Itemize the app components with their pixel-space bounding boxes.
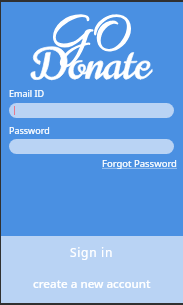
staticText: Password — [9, 124, 50, 136]
button[interactable]: Forgot Password — [98, 155, 181, 172]
button[interactable] — [9, 139, 174, 154]
button[interactable]: Sign in — [50, 241, 134, 263]
staticText: create a new account — [33, 276, 151, 292]
staticText: Email ID — [9, 87, 45, 99]
button[interactable] — [9, 103, 174, 118]
staticText: Forgot Password — [102, 157, 177, 170]
staticText: Sign in — [70, 244, 114, 260]
button[interactable]: create a new account — [23, 274, 161, 294]
